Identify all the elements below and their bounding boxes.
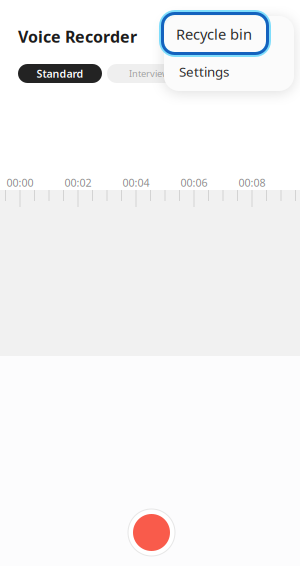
staticText: 00:08 (238, 175, 265, 190)
staticText: Settings (179, 63, 229, 80)
button[interactable]: Settings (164, 52, 297, 91)
staticText: Recycle bin (176, 24, 252, 44)
staticText: Standard (36, 66, 83, 81)
staticText: 00:04 (122, 175, 149, 190)
staticText: 00:02 (64, 175, 91, 190)
button[interactable]: Record (128, 509, 175, 556)
staticText: Voice Recorder (18, 26, 137, 47)
button[interactable]: Standard (18, 64, 102, 83)
button[interactable]: Interview (107, 64, 191, 83)
staticText: 00:06 (180, 175, 207, 190)
staticText: 00:00 (6, 175, 33, 190)
staticText: Interview (129, 67, 169, 80)
button[interactable]: Recycle bin (164, 16, 294, 52)
